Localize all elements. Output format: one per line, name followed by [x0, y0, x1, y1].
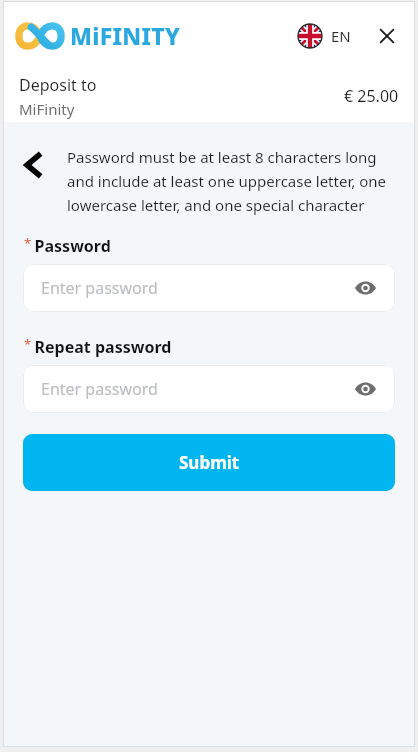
- staticText: Deposit to: [19, 74, 97, 96]
- button[interactable]: Show password: [351, 274, 379, 302]
- staticText: Enter password: [41, 277, 158, 299]
- staticText: Enter password: [41, 378, 158, 400]
- staticText: MiFINITY: [70, 20, 181, 51]
- button[interactable]: Back: [9, 141, 57, 189]
- staticText: MiFinity: [19, 99, 75, 119]
- staticText: Submit: [179, 451, 240, 474]
- staticText: * Repeat password: [24, 335, 172, 358]
- button[interactable]: MiFinity home: [18, 20, 181, 51]
- button[interactable]: EN: [294, 18, 355, 54]
- button[interactable]: Enter password: [23, 365, 395, 413]
- button[interactable]: Close: [369, 18, 405, 54]
- staticText: EN: [331, 26, 351, 46]
- staticText: € 25.00: [344, 85, 399, 107]
- staticText: Password must be at least 8 characters l…: [67, 147, 393, 215]
- button[interactable]: Show password: [351, 375, 379, 403]
- button[interactable]: Submit: [23, 434, 395, 491]
- staticText: * Password: [24, 234, 111, 257]
- button[interactable]: Enter password: [23, 264, 395, 312]
